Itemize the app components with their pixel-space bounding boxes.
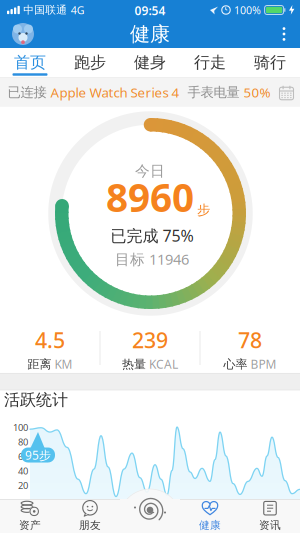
staticText: 100% [234, 3, 261, 17]
staticText: BPM [250, 356, 276, 372]
staticText: 资产 [19, 519, 41, 532]
button[interactable]: 跑步 [60, 48, 120, 77]
staticText: 8960 [106, 171, 194, 223]
staticText: 热量 [122, 357, 146, 371]
staticText: 朋友 [79, 519, 101, 532]
staticText: 95步 [25, 447, 51, 463]
staticText: 今日 [135, 162, 165, 180]
staticText: 40 [18, 465, 28, 477]
staticText: 中国联通 [23, 3, 67, 16]
staticText: 100 [13, 421, 28, 434]
button[interactable]: 骑行 [240, 48, 300, 77]
button[interactable]: 个人头像 [12, 23, 34, 45]
button[interactable]: 朋友 [60, 499, 120, 533]
staticText: 目标 11946 [115, 249, 189, 269]
button[interactable]: 资产 [0, 499, 60, 533]
staticText: 4.5 [35, 326, 65, 354]
staticText: 跑步 [74, 53, 106, 72]
staticText: 78 [238, 326, 262, 354]
staticText: 50% [243, 83, 270, 101]
staticText: 239 [132, 326, 168, 354]
staticText: 心率 [223, 357, 247, 371]
staticText: 健康 [130, 22, 170, 46]
staticText: 80 [18, 436, 28, 448]
button[interactable]: 资讯 [240, 499, 300, 533]
staticText: KM [54, 356, 72, 372]
staticText: 距离 [27, 357, 51, 371]
button[interactable]: 更多 [274, 22, 294, 46]
staticText: 09:54 [134, 2, 165, 18]
staticText: Apple Watch Series 4 [50, 83, 179, 101]
staticText: 健康 [199, 519, 221, 532]
button[interactable]: 日历 [278, 85, 294, 100]
button[interactable]: 发现 [130, 493, 170, 527]
staticText: 资讯 [259, 519, 281, 532]
staticText: 手表电量 [179, 84, 243, 100]
staticText: 已连接 [7, 84, 50, 100]
staticText: KCAL [149, 356, 178, 372]
staticText: 60 [18, 450, 28, 463]
staticText: 活跃统计 [4, 390, 68, 410]
staticText: 首页 [14, 53, 46, 72]
staticText: 已完成 75% [110, 225, 193, 246]
staticText: 骑行 [254, 53, 286, 72]
button[interactable]: 健身 [120, 48, 180, 77]
button[interactable]: 首页 [0, 48, 60, 77]
button[interactable]: 行走 [180, 48, 240, 77]
staticText: 4G [71, 3, 85, 17]
staticText: 步 [197, 202, 210, 218]
button[interactable]: 健康 [180, 499, 240, 533]
staticText: 20 [18, 479, 28, 492]
staticText: 行走 [194, 53, 226, 72]
staticText: 健身 [134, 53, 166, 72]
